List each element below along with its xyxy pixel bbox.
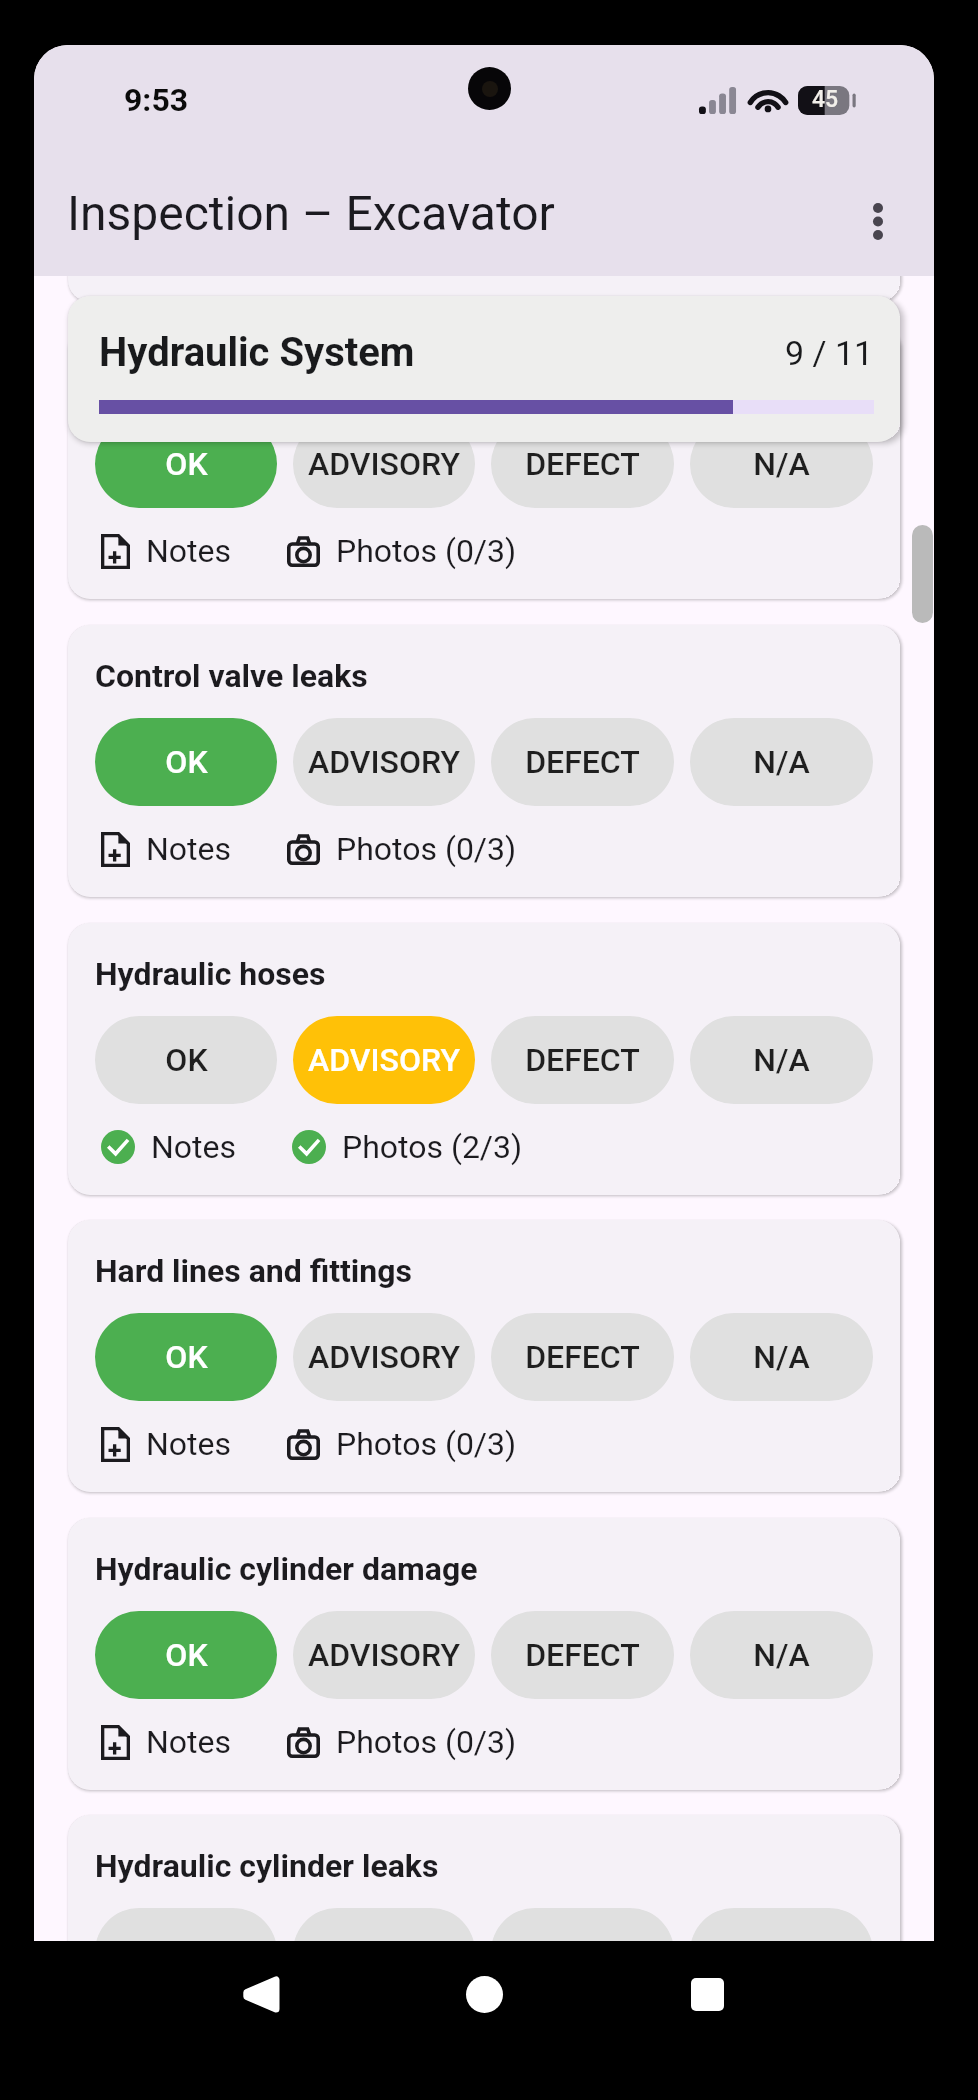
button[interactable]: Photos (0/3) <box>287 830 517 868</box>
staticText: ADVISORY <box>308 1636 460 1674</box>
button[interactable]: OK <box>95 1611 277 1699</box>
staticText: Hydraulic hoses <box>95 955 326 993</box>
button[interactable]: Photos (0/3) <box>287 532 517 570</box>
button[interactable]: ADVISORY <box>293 1908 475 1941</box>
staticText: OK <box>165 445 208 483</box>
button[interactable]: OK <box>95 1908 277 1941</box>
staticText: Photos (0/3) <box>336 1425 517 1463</box>
button[interactable]: ADVISORY <box>293 1611 475 1699</box>
staticText: Notes <box>146 830 232 868</box>
button[interactable]: Notes <box>101 1128 237 1166</box>
staticText: Inspection – Excavator <box>67 185 555 241</box>
button[interactable]: Fluid level <box>68 327 900 599</box>
button[interactable]: Notes <box>101 532 232 570</box>
button[interactable]: N/A <box>690 1908 873 1941</box>
button[interactable]: OK <box>95 420 277 508</box>
button[interactable]: OK <box>95 1016 277 1104</box>
button[interactable]: N/A <box>690 1611 873 1699</box>
button[interactable]: DEFECT <box>491 718 674 806</box>
staticText: Hard lines and fittings <box>95 1252 412 1290</box>
staticText: N/A <box>753 445 810 483</box>
button[interactable]: DEFECT <box>491 420 674 508</box>
staticText: ADVISORY <box>308 743 460 781</box>
staticText: Photos (0/3) <box>336 532 517 570</box>
button[interactable]: More options <box>836 179 920 263</box>
button[interactable]: Photos (0/3) <box>287 1425 517 1463</box>
staticText: Control valve leaks <box>95 657 368 695</box>
staticText: Notes <box>151 1128 237 1166</box>
staticText: N/A <box>753 1041 810 1079</box>
button[interactable]: Hard lines and fittings <box>68 1220 900 1492</box>
button[interactable]: Hydraulic System <box>68 296 900 442</box>
staticText: N/A <box>753 743 810 781</box>
button[interactable]: N/A <box>690 420 873 508</box>
button[interactable]: Back <box>184 1939 334 2049</box>
button[interactable]: Notes <box>101 1723 232 1761</box>
staticText: Hydraulic System <box>99 329 415 376</box>
staticText: 9 / 11 <box>785 333 874 373</box>
staticText: OK <box>165 1636 208 1674</box>
staticText: ADVISORY <box>308 1041 460 1079</box>
button[interactable]: ADVISORY <box>293 1016 475 1104</box>
staticText: ADVISORY <box>308 445 460 483</box>
staticText: Notes <box>146 532 232 570</box>
button[interactable]: Photos (2/3) <box>292 1128 523 1166</box>
staticText: Photos (2/3) <box>342 1128 523 1166</box>
staticText: DEFECT <box>525 445 640 483</box>
staticText: Fluid level <box>95 359 241 397</box>
button[interactable]: Home <box>409 1939 559 2049</box>
button[interactable]: Notes <box>101 1425 232 1463</box>
button[interactable]: OK <box>95 718 277 806</box>
button[interactable]: DEFECT <box>491 1016 674 1104</box>
button[interactable]: Photos (0/3) <box>287 1723 517 1761</box>
button[interactable]: Pump performance <box>68 276 900 302</box>
staticText: DEFECT <box>525 1636 640 1674</box>
staticText: N/A <box>753 1636 810 1674</box>
button[interactable]: OK <box>95 1313 277 1401</box>
staticText: 45 <box>812 86 839 113</box>
staticText: 9:53 <box>124 81 189 119</box>
button[interactable]: N/A <box>690 718 873 806</box>
staticText: OK <box>165 743 208 781</box>
staticText: Notes <box>146 1425 232 1463</box>
button[interactable]: Hydraulic cylinder leaks <box>68 1815 900 1941</box>
staticText: OK <box>165 1041 208 1079</box>
button[interactable]: N/A <box>690 1313 873 1401</box>
button[interactable]: DEFECT <box>491 1611 674 1699</box>
button[interactable]: Notes <box>101 830 232 868</box>
button[interactable]: DEFECT <box>491 1908 674 1941</box>
staticText: N/A <box>753 1338 810 1376</box>
button[interactable]: N/A <box>690 1016 873 1104</box>
button[interactable]: Hydraulic hoses <box>68 923 900 1195</box>
button[interactable]: Control valve leaks <box>68 625 900 897</box>
staticText: ADVISORY <box>308 1338 460 1376</box>
staticText: Hydraulic cylinder leaks <box>95 1847 439 1885</box>
staticText: OK <box>165 1338 208 1376</box>
button[interactable]: ADVISORY <box>293 718 475 806</box>
staticText: Notes <box>146 1723 232 1761</box>
button[interactable]: DEFECT <box>491 1313 674 1401</box>
staticText: DEFECT <box>525 1338 640 1376</box>
button[interactable]: ADVISORY <box>293 420 475 508</box>
staticText: DEFECT <box>525 743 640 781</box>
staticText: Photos (0/3) <box>336 830 517 868</box>
staticText: Photos (0/3) <box>336 1723 517 1761</box>
button[interactable]: Recent apps <box>632 1939 782 2049</box>
staticText: DEFECT <box>525 1041 640 1079</box>
button[interactable]: Hydraulic cylinder damage <box>68 1518 900 1790</box>
staticText: Hydraulic cylinder damage <box>95 1550 478 1588</box>
button[interactable]: ADVISORY <box>293 1313 475 1401</box>
